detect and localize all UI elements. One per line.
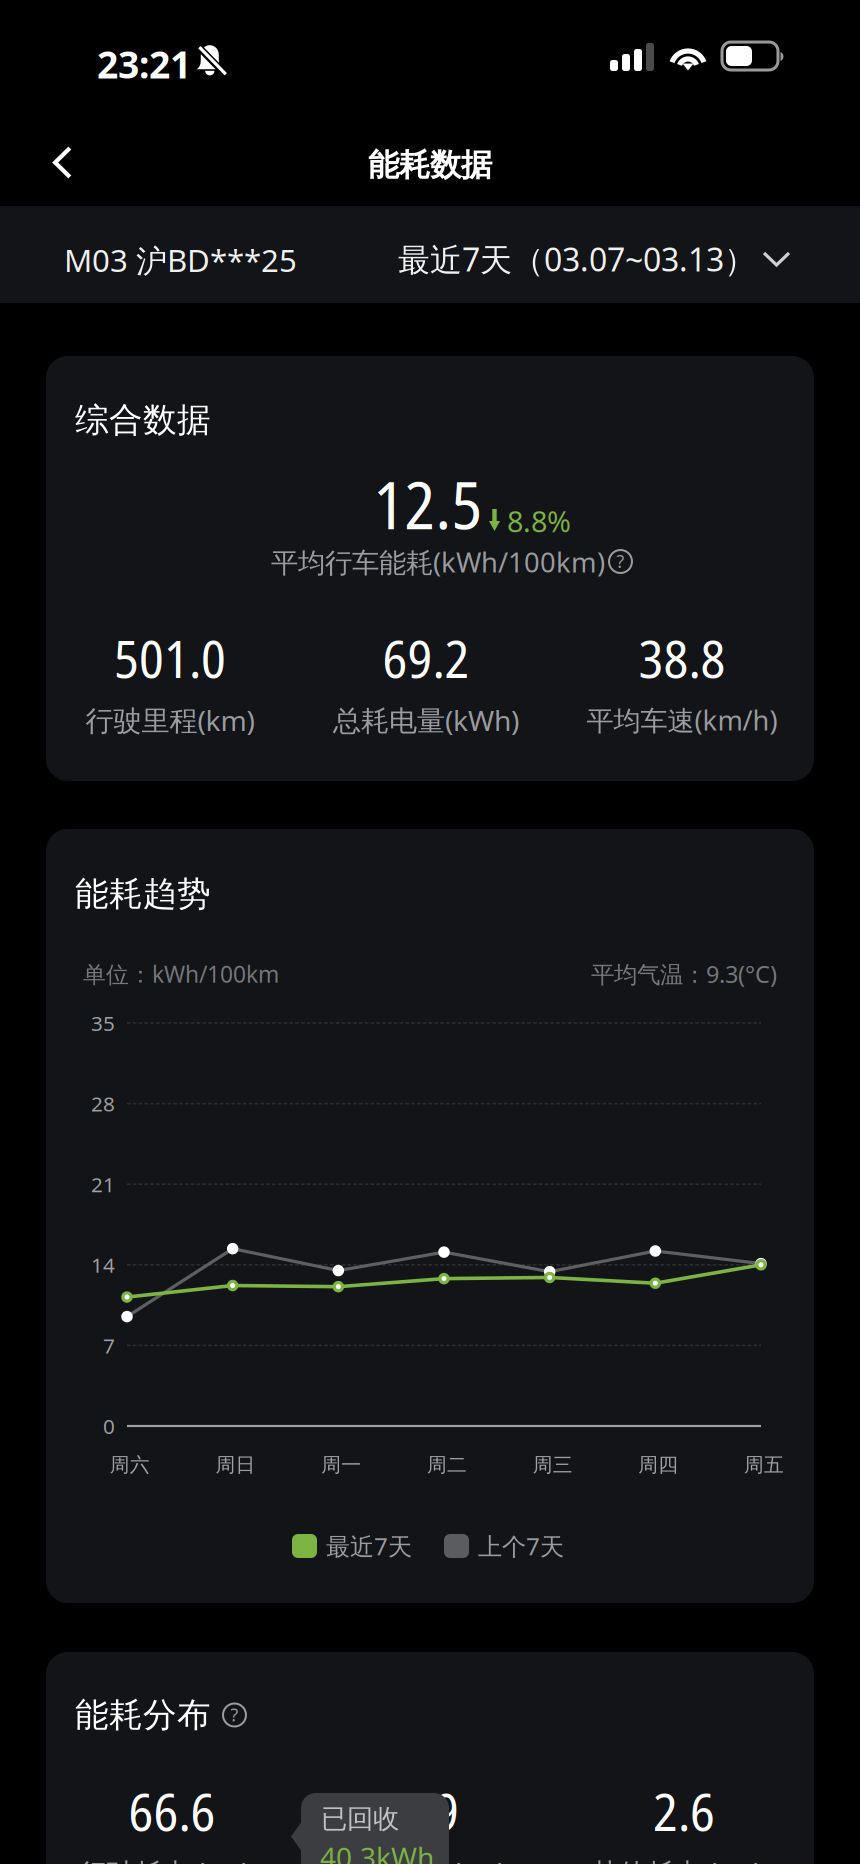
staticText: 行驶里程(km): [85, 701, 254, 739]
staticText: 7: [103, 1331, 115, 1359]
staticText: 周六: [110, 1453, 150, 1477]
staticText: 总耗电量(kWh): [333, 701, 519, 739]
staticText: 单位：kWh/100km: [83, 958, 279, 990]
staticText: 行驶耗电(kWh): [79, 1854, 265, 1864]
staticText: 0.9: [397, 1776, 459, 1846]
staticText: 周五: [744, 1453, 784, 1477]
staticText: 上个7天: [478, 1530, 564, 1562]
staticText: 能耗趋势: [75, 873, 211, 915]
staticText: 已回收: [321, 1802, 399, 1836]
staticText: 周二: [427, 1453, 467, 1477]
staticText: 66.6: [128, 1776, 215, 1846]
button[interactable]: M03 沪BD***25: [0, 206, 330, 278]
staticText: 最近7天: [326, 1530, 412, 1562]
staticText: 69.2: [382, 623, 469, 693]
staticText: 平均车速(km/h): [586, 701, 777, 738]
staticText: 其他耗电(kWh): [591, 1854, 777, 1864]
staticText: 40.3kWh: [320, 1838, 434, 1864]
staticText: 14: [91, 1251, 115, 1279]
staticText: 周四: [638, 1453, 678, 1477]
staticText: 0: [103, 1412, 115, 1440]
staticText: 能耗分布: [75, 1694, 211, 1736]
staticText: 空调耗电(kWh): [335, 1854, 521, 1864]
staticText: 平均行车能耗(kWh/100km): [271, 543, 605, 581]
staticText: M03 沪BD***25: [64, 239, 297, 281]
staticText: 综合数据: [75, 399, 211, 441]
staticText: 周日: [215, 1453, 255, 1477]
staticText: 28: [91, 1089, 115, 1118]
staticText: 最近7天（03.07~03.13）: [398, 237, 756, 281]
staticText: 能耗数据: [368, 145, 492, 185]
staticText: 平均气温：9.3(°C): [591, 958, 777, 990]
staticText: ?: [230, 1702, 238, 1727]
staticText: 23:21: [97, 39, 191, 89]
staticText: 35: [91, 1009, 115, 1037]
staticText: 2.6: [653, 1776, 715, 1846]
staticText: ?: [616, 549, 624, 573]
staticText: 8.8%: [507, 501, 571, 541]
staticText: 周三: [533, 1453, 573, 1477]
button[interactable]: Back: [0, 110, 96, 206]
staticText: 38.8: [638, 623, 725, 693]
staticText: 501.0: [114, 623, 226, 693]
staticText: 21: [91, 1170, 115, 1198]
staticText: 12.5: [373, 459, 482, 548]
button[interactable]: 最近7天（03.07~03.13）: [0, 206, 798, 290]
staticText: 周一: [321, 1453, 361, 1477]
